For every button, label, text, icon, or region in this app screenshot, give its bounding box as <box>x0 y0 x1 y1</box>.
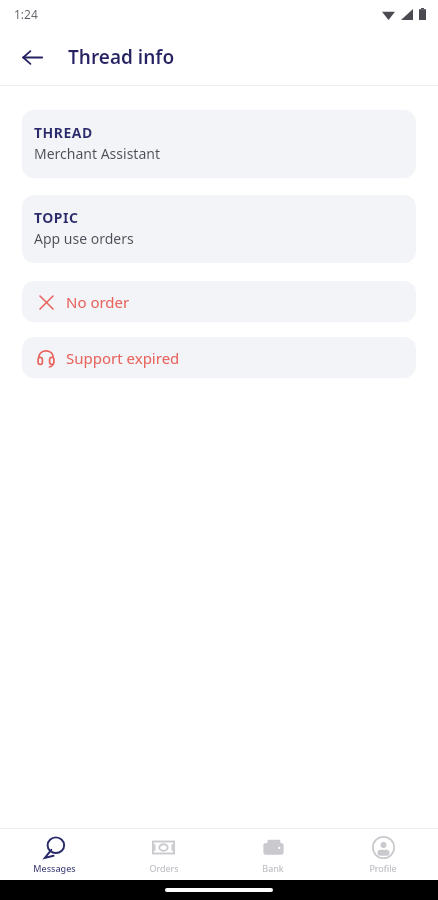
staticText: App use orders <box>34 229 134 248</box>
staticText: 1:24 <box>14 6 38 22</box>
staticText: THREAD <box>34 123 93 142</box>
staticText: Profile <box>369 862 397 874</box>
button[interactable]: Profile <box>328 829 438 880</box>
staticText: No order <box>66 292 130 312</box>
staticText: Messages <box>33 862 76 874</box>
staticText: TOPIC <box>34 208 79 227</box>
button[interactable]: No order <box>22 281 416 322</box>
button[interactable]: Orders <box>109 829 218 880</box>
button[interactable]: Bank <box>218 829 328 880</box>
staticText: Merchant Assistant <box>34 144 160 163</box>
button[interactable]: THREAD <box>22 110 416 178</box>
staticText: Bank <box>262 862 284 874</box>
staticText: Thread info <box>68 44 175 70</box>
staticText: Support expired <box>66 348 180 368</box>
staticText: Orders <box>149 862 179 874</box>
button[interactable]: TOPIC <box>22 195 416 263</box>
button[interactable]: Back <box>13 38 51 76</box>
button[interactable]: Messages <box>0 829 109 880</box>
button[interactable]: Support expired <box>22 337 416 378</box>
